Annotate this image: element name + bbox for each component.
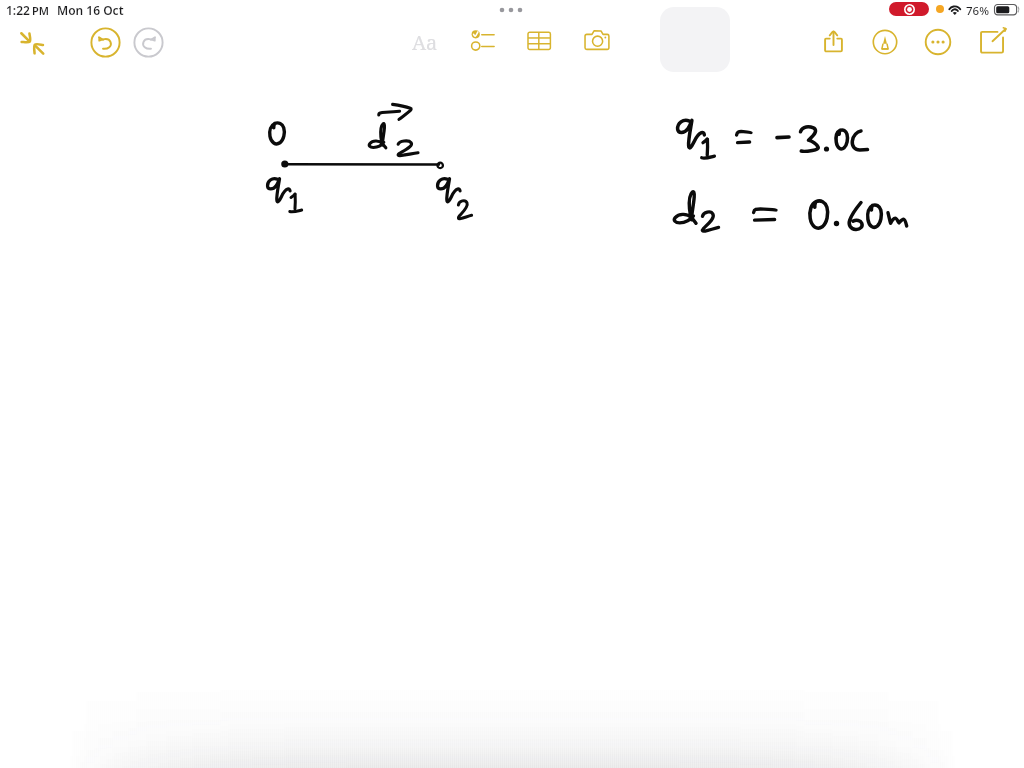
staticText: PM (32, 3, 49, 18)
button[interactable]: More (923, 27, 953, 57)
staticText: 1:22 (6, 2, 30, 18)
button[interactable]: Markup (870, 27, 900, 57)
staticText: Aa (412, 29, 438, 53)
button[interactable]: Table (523, 28, 554, 59)
button[interactable]: Screen recording (889, 2, 929, 16)
staticText: Mon 16 Oct (57, 2, 124, 18)
button[interactable]: Undo (90, 27, 121, 58)
button[interactable]: Collapse (17, 28, 47, 58)
button[interactable]: Text format (412, 29, 442, 53)
button[interactable]: Camera (581, 28, 612, 59)
button[interactable]: Checklist (467, 28, 498, 59)
staticText: 76% (966, 3, 989, 19)
button[interactable]: Share (819, 27, 848, 56)
button[interactable]: Redo (133, 27, 164, 58)
button[interactable]: Compose (977, 26, 1008, 57)
